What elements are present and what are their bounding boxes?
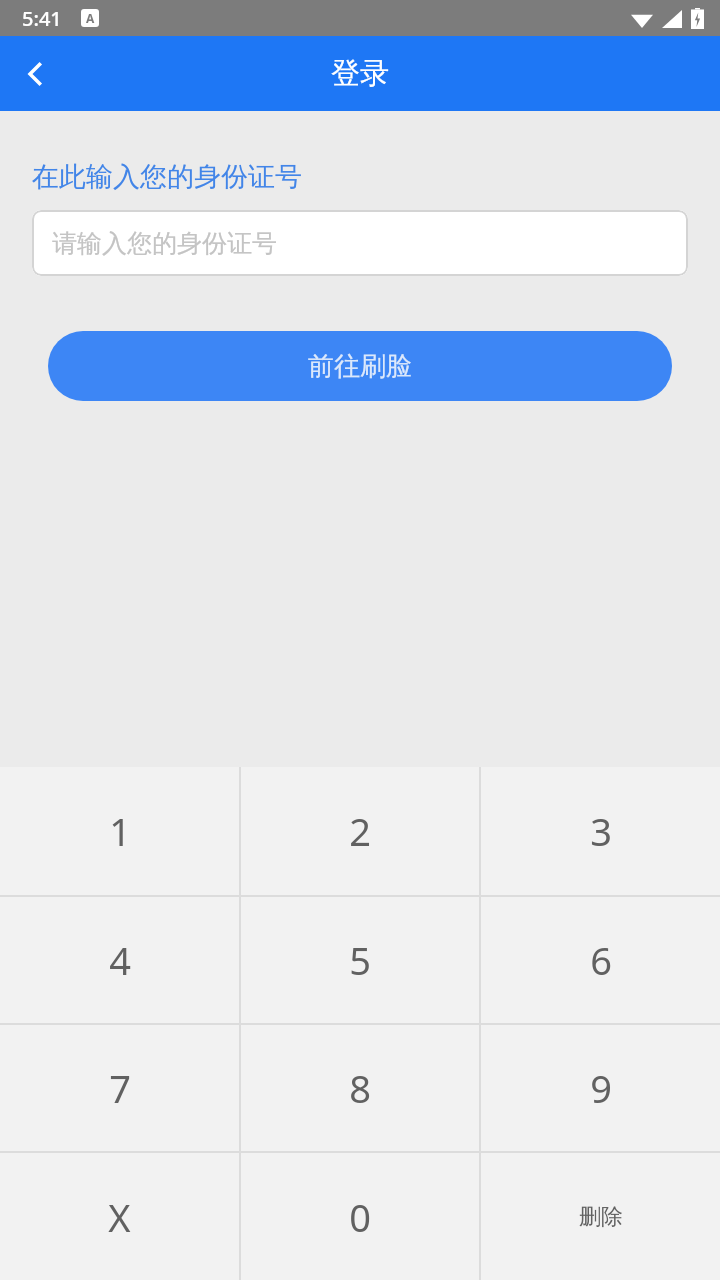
staticText: 3 xyxy=(590,805,612,857)
button[interactable]: 6 xyxy=(481,897,720,1023)
staticText: 前往刷脸 xyxy=(308,350,412,383)
button[interactable]: 9 xyxy=(481,1025,720,1151)
staticText: 在此输入您的身份证号 xyxy=(32,160,302,194)
button[interactable]: 5 xyxy=(241,897,479,1023)
button[interactable]: 删除 xyxy=(481,1153,720,1280)
staticText: X xyxy=(108,1191,131,1243)
button[interactable]: 4 xyxy=(0,897,239,1023)
button[interactable]: 请输入您的身份证号 xyxy=(32,210,688,276)
button[interactable]: 1 xyxy=(0,767,239,895)
button[interactable]: X xyxy=(0,1153,239,1280)
staticText: 2 xyxy=(349,805,371,857)
button[interactable]: 前往刷脸 xyxy=(48,331,672,401)
staticText: 7 xyxy=(109,1062,131,1114)
staticText: 6 xyxy=(590,934,612,986)
button[interactable]: 2 xyxy=(241,767,479,895)
button[interactable]: Back xyxy=(0,38,72,110)
staticText: 9 xyxy=(590,1062,612,1114)
staticText: 1 xyxy=(109,805,131,857)
staticText: A xyxy=(86,10,95,26)
button[interactable]: 8 xyxy=(241,1025,479,1151)
staticText: 8 xyxy=(349,1062,371,1114)
staticText: 删除 xyxy=(579,1203,623,1231)
staticText: 4 xyxy=(109,934,131,986)
staticText: 5:41 xyxy=(22,5,62,32)
staticText: 请输入您的身份证号 xyxy=(52,228,277,259)
staticText: 登录 xyxy=(331,55,389,92)
button[interactable]: 7 xyxy=(0,1025,239,1151)
staticText: 5 xyxy=(349,934,371,986)
staticText: 0 xyxy=(349,1191,371,1243)
button[interactable]: 3 xyxy=(481,767,720,895)
button[interactable]: 0 xyxy=(241,1153,479,1280)
